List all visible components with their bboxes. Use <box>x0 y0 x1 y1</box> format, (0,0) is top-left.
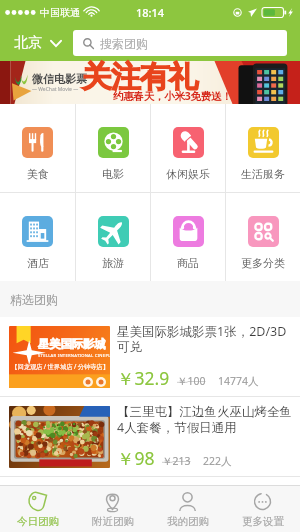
staticText: 附近团购 <box>92 515 134 528</box>
staticText: 旅游 <box>102 256 124 270</box>
staticText: ￥32.9 <box>117 366 170 390</box>
button[interactable]: 微信电影票 <box>0 61 300 104</box>
staticText: 14774人 <box>218 374 259 388</box>
staticText: 约惠春天，小米3免费送！ <box>113 89 232 103</box>
staticText: ￥98 <box>117 446 155 470</box>
button[interactable]: 休闲娱乐 <box>151 104 225 192</box>
staticText: 我的团购 <box>167 515 209 528</box>
staticText: 星美国际影城影票1张，2D/3D可兑 <box>117 323 292 355</box>
staticText: ￥213 <box>162 454 191 468</box>
staticText: STELLAR INTERNATIONAL CINEPLEX <box>38 353 110 359</box>
staticText: 更多设置 <box>242 515 284 528</box>
staticText: 精选团购 <box>10 292 58 307</box>
staticText: 搜索团购 <box>100 36 148 51</box>
staticText: 18:14 <box>136 5 165 20</box>
staticText: 北京 <box>14 34 42 52</box>
button[interactable]: 美食 <box>0 104 75 192</box>
staticText: 酒店 <box>27 256 49 270</box>
staticText: 222人 <box>203 454 232 468</box>
staticText: ￥100 <box>177 374 206 388</box>
staticText: 今日团购 <box>17 515 59 528</box>
staticText: — WeChat Movie — <box>32 86 79 93</box>
button[interactable]: 电影 <box>76 104 150 192</box>
button[interactable]: 我的团购 <box>150 486 225 532</box>
staticText: 电影 <box>102 167 124 181</box>
button[interactable]: 星美国际影城 <box>0 317 300 396</box>
button[interactable]: 商品 <box>151 193 225 281</box>
button[interactable]: 附近团购 <box>75 486 150 532</box>
staticText: 星美国际影城 <box>38 337 106 351</box>
staticText: 生活服务 <box>241 167 285 181</box>
button[interactable]: 搜索团购 <box>73 30 287 56</box>
staticText: 微信电影票 <box>32 72 87 86</box>
button[interactable]: 旅游 <box>76 193 150 281</box>
staticText: 关注有礼 <box>82 58 198 96</box>
staticText: 【回龙观店 / 世界城店 / 分钟寺店】 <box>11 362 109 371</box>
staticText: 商品 <box>177 256 199 270</box>
staticText: 美食 <box>27 167 49 181</box>
staticText: 休闲娱乐 <box>166 167 210 181</box>
staticText: 更多分类 <box>241 256 285 270</box>
button[interactable]: 北京 <box>14 30 64 56</box>
staticText: 【三里屯】江边鱼火巫山烤全鱼4人套餐，节假日通用 <box>117 404 292 435</box>
button[interactable]: 今日团购 <box>0 486 75 532</box>
staticText: 中国联通 <box>40 6 80 19</box>
button[interactable]: 生活服务 <box>226 104 300 192</box>
button[interactable]: 酒店 <box>0 193 75 281</box>
button[interactable]: 【三里屯】江边鱼火巫山烤全鱼4人套餐，节假日通用 <box>0 397 300 476</box>
button[interactable]: 更多设置 <box>225 486 300 532</box>
button[interactable]: 更多分类 <box>226 193 300 281</box>
